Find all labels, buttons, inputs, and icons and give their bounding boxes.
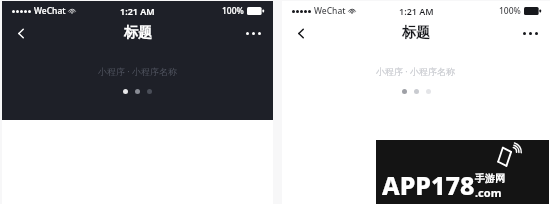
staticText: 标题 [124,24,152,42]
button[interactable]: More options [515,19,545,47]
button[interactable]: Back [7,19,35,47]
staticText: 1:21 AM [120,5,155,17]
staticText: .com [475,185,502,200]
staticText: APP178 [382,168,475,202]
staticText: WeChat [314,5,346,17]
staticText: 1:21 AM [399,5,434,17]
staticText: 小程序 · 小程序名称 [376,65,456,77]
staticText: 标题 [402,24,430,42]
button[interactable]: More options [238,19,268,47]
button[interactable]: Back [287,19,315,47]
staticText: 100% [499,5,521,17]
staticText: 100% [222,5,244,17]
staticText: WeChat [34,5,66,17]
staticText: 小程序 · 小程序名称 [98,65,178,77]
staticText: 手游网 [475,172,505,185]
